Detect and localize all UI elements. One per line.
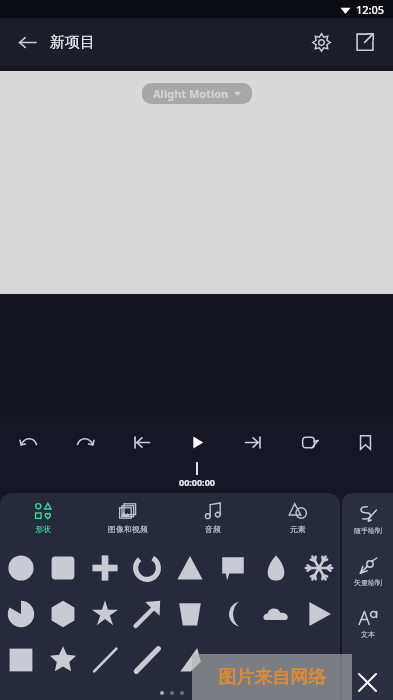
button[interactable]: Shape 5 [211,545,254,591]
button[interactable]: Shape 16 [0,637,42,683]
button[interactable]: 矢量绘制 [342,545,393,597]
staticText: 音频 [205,524,221,534]
button[interactable]: 图像和视频 [85,493,170,541]
button[interactable]: Shape 3 [126,545,168,591]
button[interactable]: Shape 13 [211,591,254,637]
button[interactable]: Back [12,27,42,57]
button[interactable]: Shape 10 [84,591,126,637]
button[interactable]: 形状 [0,493,85,541]
staticText: 随手绘制 [354,526,382,535]
button[interactable]: Shape 4 [168,545,211,591]
button[interactable]: Undo [0,423,57,461]
staticText: 图片来自网络 [218,666,326,689]
staticText: 文本 [361,630,375,639]
button[interactable]: Shape 18 [84,637,126,683]
staticText: 新项目 [50,33,95,52]
button[interactable]: Shape 7 [297,545,340,591]
button[interactable]: Skip to start [113,423,169,461]
button[interactable]: Shape 22 [254,637,297,683]
button[interactable]: Play [169,423,225,461]
button[interactable]: 音频 [170,493,255,541]
button[interactable]: Loop [281,423,337,461]
button[interactable]: Redo [57,423,113,461]
button[interactable]: Shape 8 [0,591,42,637]
button[interactable]: Shape 17 [42,637,84,683]
staticText: 12:05 [356,2,385,17]
button[interactable]: Skip to end [225,423,281,461]
button[interactable]: Shape 21 [211,637,254,683]
button[interactable]: Shape 2 [84,545,126,591]
button[interactable]: Shape 11 [126,591,168,637]
button[interactable]: Shape 14 [254,591,297,637]
button[interactable]: Bookmark [337,423,393,461]
staticText: 00:00:00 [179,476,215,488]
staticText: 图像和视频 [108,524,148,534]
button[interactable]: 文本 [342,597,393,649]
staticText: 矢量绘制 [354,578,382,587]
button[interactable]: Shape 0 [0,545,42,591]
button[interactable]: Shape 12 [168,591,211,637]
button[interactable]: Shape 23 [297,637,340,683]
button[interactable]: Export [349,26,381,58]
button[interactable]: Close [342,664,393,700]
button[interactable]: 元素 [255,493,340,541]
button[interactable]: Alight Motion [142,83,252,104]
button[interactable]: Shape 9 [42,591,84,637]
button[interactable]: Shape 20 [168,637,211,683]
button[interactable]: Shape 6 [254,545,297,591]
button[interactable]: 随手绘制 [342,493,393,545]
button[interactable]: Shape 19 [126,637,168,683]
staticText: 形状 [35,524,51,534]
staticText: 元素 [290,524,306,534]
button[interactable]: Shape 15 [297,591,340,637]
button[interactable]: Shape 1 [42,545,84,591]
button[interactable]: Settings [305,26,337,58]
staticText: Alight Motion [153,86,229,101]
